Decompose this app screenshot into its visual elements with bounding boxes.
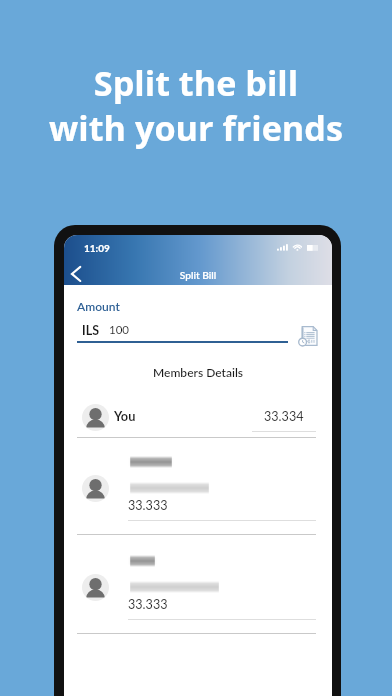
staticText: 33.333 xyxy=(128,498,168,513)
button[interactable]: Scan receipt xyxy=(298,324,319,348)
staticText: 11:09 xyxy=(84,242,110,254)
staticText: You xyxy=(114,408,136,423)
staticText: Amount xyxy=(77,299,120,313)
staticText: Split Bill xyxy=(64,269,332,281)
staticText: 33.333 xyxy=(128,597,168,612)
staticText: Split the bill with your friends xyxy=(0,59,392,151)
staticText: ILS xyxy=(82,323,100,338)
button[interactable]: 33.333 xyxy=(64,443,332,537)
button[interactable]: You xyxy=(64,395,332,443)
staticText: 33.334 xyxy=(264,409,304,424)
staticText: Members Details xyxy=(64,365,332,379)
button[interactable]: 33.333 xyxy=(64,542,332,636)
button[interactable]: Back xyxy=(64,261,90,285)
staticText: 100 xyxy=(109,323,130,337)
